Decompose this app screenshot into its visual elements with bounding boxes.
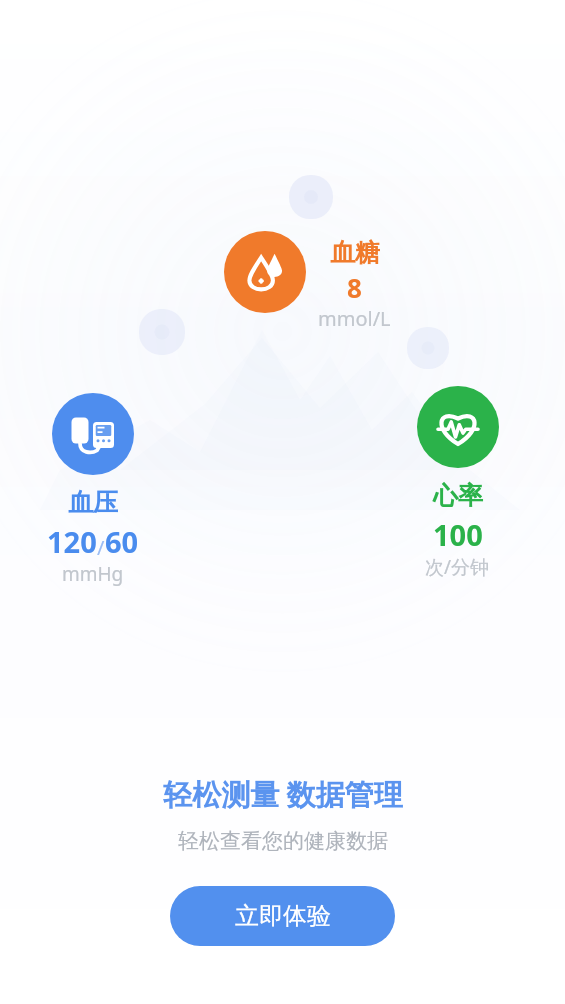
staticText: 轻松测量 数据管理 bbox=[163, 774, 403, 814]
staticText: mmol/L bbox=[318, 305, 391, 332]
button[interactable]: 血压 bbox=[30, 393, 155, 587]
staticText: 血糖 bbox=[330, 237, 380, 268]
button[interactable]: 立即体验 bbox=[170, 886, 395, 946]
staticText: / bbox=[97, 534, 105, 561]
staticText: 立即体验 bbox=[235, 901, 331, 931]
button[interactable]: 血糖 bbox=[224, 231, 391, 332]
staticText: 100 bbox=[433, 515, 483, 554]
staticText: 次/分钟 bbox=[425, 554, 490, 580]
staticText: 60 bbox=[105, 522, 139, 561]
staticText: 120 bbox=[47, 522, 97, 561]
staticText: 心率 bbox=[433, 480, 483, 511]
other: 血糖 bbox=[224, 231, 306, 313]
staticText: 8 bbox=[347, 270, 362, 305]
button[interactable]: 心率 bbox=[395, 386, 520, 580]
staticText: 血压 bbox=[68, 487, 118, 518]
staticText: 轻松查看您的健康数据 bbox=[178, 828, 388, 854]
staticText: mmHg bbox=[62, 561, 124, 587]
other: 血压 bbox=[52, 393, 134, 475]
other: 心率 bbox=[417, 386, 499, 468]
